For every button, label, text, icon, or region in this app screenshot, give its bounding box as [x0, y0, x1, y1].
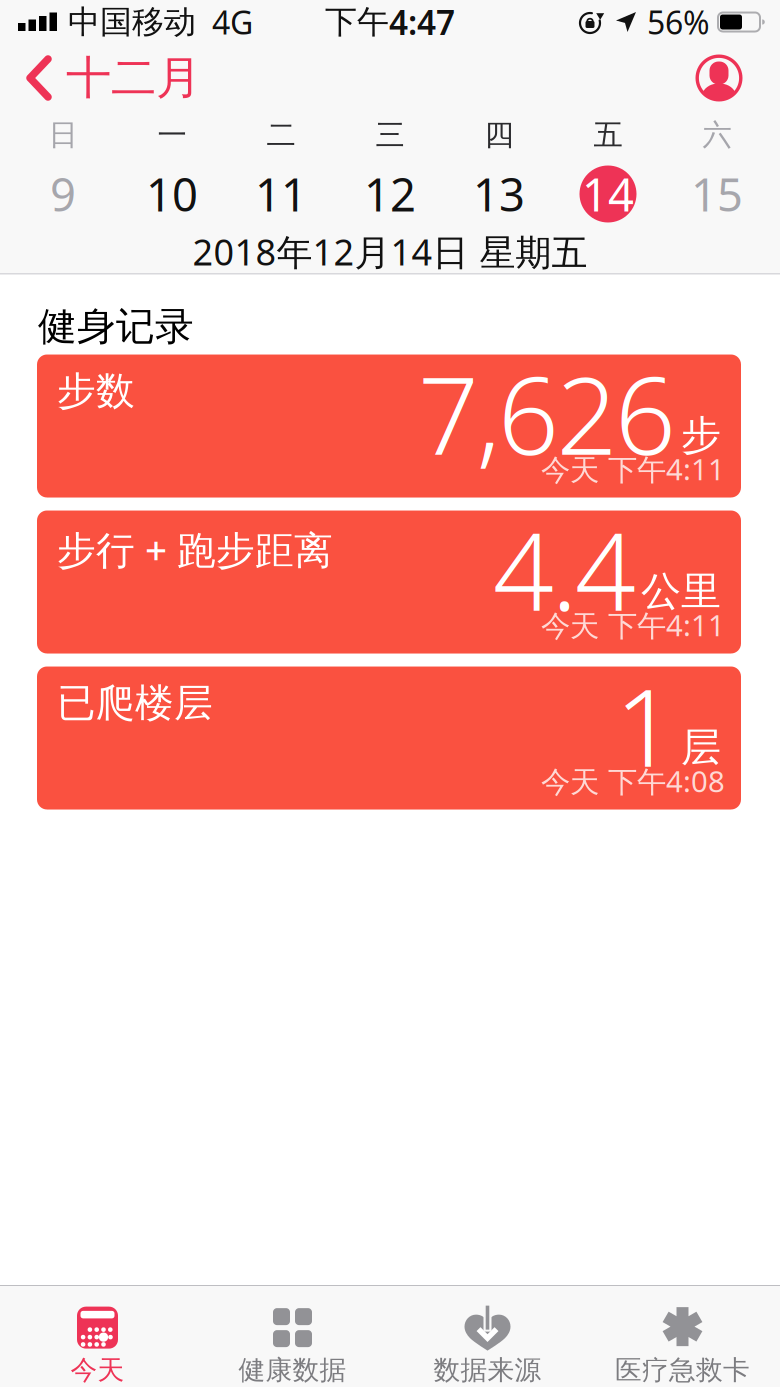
button[interactable]: 已爬楼层 — [37, 666, 741, 809]
staticText: 2018年12月14日 星期五 — [192, 228, 587, 275]
staticText: 10 — [146, 164, 198, 224]
button[interactable]: 医疗急救卡 — [585, 1286, 780, 1387]
staticText: 15 — [691, 164, 743, 224]
staticText: 四 — [484, 117, 513, 153]
staticText: 步行 + 跑步距离 — [57, 523, 333, 575]
staticText: 9 — [50, 164, 76, 224]
button[interactable]: 步行 + 跑步距离 — [37, 510, 741, 653]
staticText: 健身记录 — [38, 303, 194, 350]
button[interactable]: 今天 — [0, 1286, 195, 1387]
staticText: 公里 — [641, 567, 721, 616]
staticText: 4G — [212, 1, 253, 43]
staticText: 步 — [681, 411, 721, 460]
staticText: 11 — [255, 164, 307, 224]
staticText: 今天 下午4:08 — [541, 761, 725, 800]
button[interactable]: 15 — [662, 158, 771, 230]
button[interactable]: 12 — [335, 158, 444, 230]
staticText: 医疗急救卡 — [615, 1354, 750, 1386]
staticText: 4.4 — [493, 498, 636, 640]
button[interactable]: 9 — [8, 158, 117, 230]
staticText: 健康数据 — [238, 1354, 346, 1386]
staticText: 层 — [681, 723, 721, 772]
staticText: 56% — [647, 1, 710, 43]
staticText: 步数 — [57, 367, 135, 415]
staticText: 14 — [582, 164, 634, 224]
staticText: 二 — [266, 117, 295, 153]
staticText: 今天 下午4:11 — [541, 605, 725, 644]
staticText: 日 — [48, 117, 77, 153]
button[interactable]: 十二月 — [0, 50, 201, 106]
button[interactable]: 11 — [226, 158, 335, 230]
staticText: 13 — [473, 164, 525, 224]
staticText: 今天 下午4:11 — [541, 449, 725, 488]
staticText: 五 — [593, 117, 622, 153]
button[interactable]: 步数 — [37, 354, 741, 497]
staticText: 下午 — [325, 2, 389, 42]
staticText: 7,626 — [418, 342, 676, 484]
staticText: 中国移动 — [68, 2, 196, 42]
button[interactable]: 健康数据 — [195, 1286, 390, 1387]
staticText: 4:47 — [389, 0, 455, 44]
button[interactable] — [695, 54, 780, 102]
staticText: 1 — [615, 654, 676, 796]
staticText: 十二月 — [66, 50, 201, 106]
button[interactable]: 13 — [444, 158, 553, 230]
staticText: 已爬楼层 — [57, 679, 213, 727]
button[interactable]: 14 — [553, 158, 662, 230]
staticText: 12 — [364, 164, 416, 224]
staticText: 数据来源 — [433, 1354, 541, 1386]
button[interactable]: 10 — [117, 158, 226, 230]
staticText: 六 — [702, 117, 731, 153]
staticText: 今天 — [70, 1354, 124, 1386]
staticText: 三 — [375, 117, 404, 153]
button[interactable]: 数据来源 — [390, 1286, 585, 1387]
staticText: 一 — [157, 117, 186, 153]
